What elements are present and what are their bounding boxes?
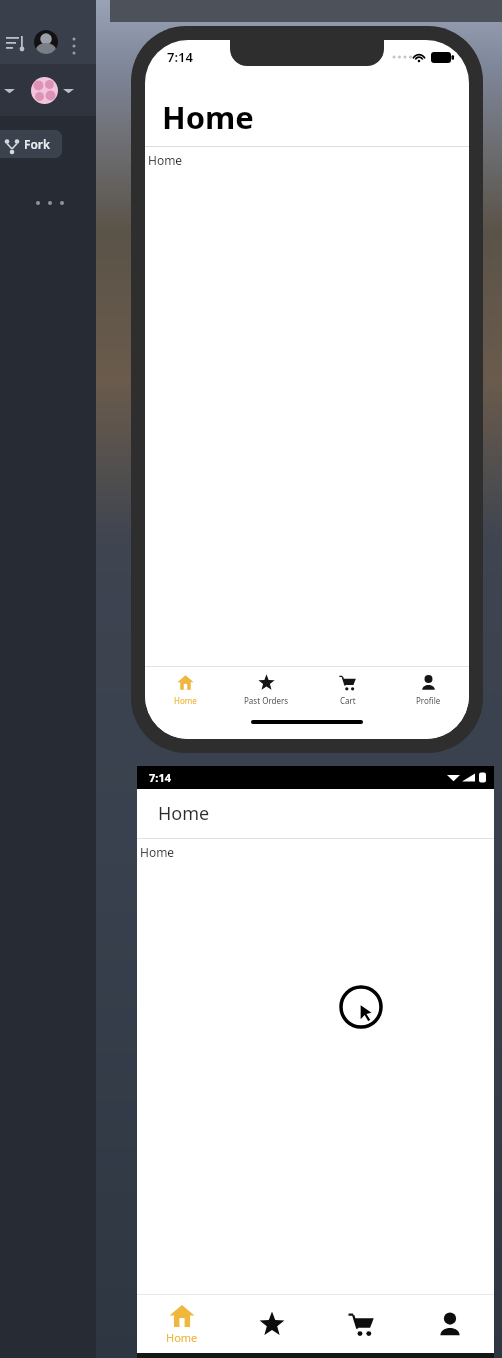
staticText: Home	[162, 96, 254, 138]
staticText: 7:14	[149, 770, 171, 785]
button[interactable]: Cart	[316, 1295, 405, 1353]
staticText: Cart	[340, 695, 356, 706]
button[interactable]: Home	[137, 1295, 227, 1353]
staticText: Profile	[416, 695, 441, 706]
button[interactable]: Profile avatar	[31, 77, 58, 104]
staticText: Fork	[24, 136, 51, 152]
button[interactable]: More options	[66, 34, 82, 50]
button[interactable]: Past Orders	[227, 1295, 316, 1353]
staticText: Home	[166, 1330, 198, 1345]
staticText: Home	[158, 801, 210, 826]
staticText: Past Orders	[244, 695, 289, 706]
staticText: 7:14	[167, 48, 193, 66]
button[interactable]: Profile	[388, 667, 469, 715]
staticText: Home	[174, 695, 197, 706]
button[interactable]: Account	[34, 30, 58, 54]
button[interactable]: Past Orders	[226, 667, 307, 715]
button[interactable]: Playlist	[6, 33, 24, 51]
staticText: Home	[140, 844, 175, 860]
button[interactable]: Profile	[405, 1295, 494, 1353]
button[interactable]: Cart	[307, 667, 388, 715]
button[interactable]: Fork	[0, 130, 62, 158]
staticText: Home	[148, 152, 183, 168]
button[interactable]: Home	[145, 667, 226, 715]
